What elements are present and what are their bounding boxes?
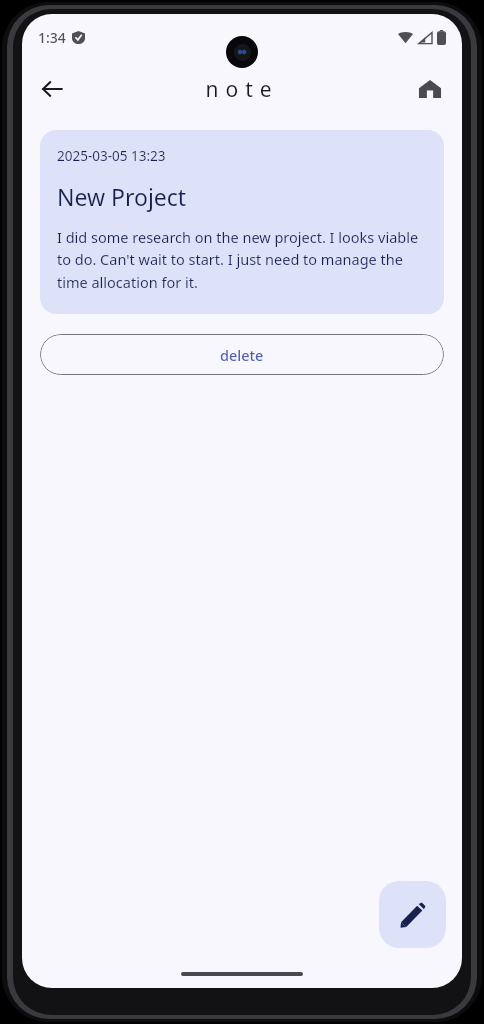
button[interactable]: Edit note bbox=[379, 881, 446, 948]
staticText: 1:34 bbox=[38, 28, 66, 47]
button[interactable]: 2025-03-05 13:23 bbox=[40, 130, 444, 314]
button[interactable]: Home bbox=[406, 65, 454, 113]
staticText: I did some research on the new project. … bbox=[57, 227, 427, 292]
staticText: New Project bbox=[57, 181, 187, 212]
staticText: delete bbox=[220, 345, 264, 365]
button[interactable]: Back bbox=[28, 65, 76, 113]
button[interactable]: delete bbox=[40, 334, 444, 375]
staticText: note bbox=[205, 75, 279, 104]
staticText: 2025-03-05 13:23 bbox=[57, 147, 166, 165]
